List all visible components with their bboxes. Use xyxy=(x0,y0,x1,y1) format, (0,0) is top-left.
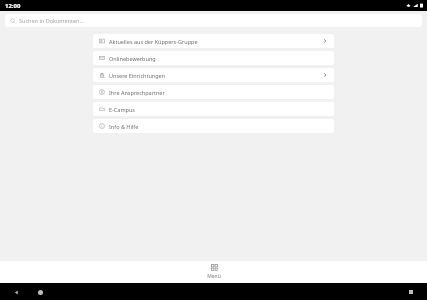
button[interactable]: Menü xyxy=(197,262,231,282)
button[interactable]: E-Campus xyxy=(93,102,334,116)
button[interactable]: Onlinebewerbung xyxy=(93,51,334,65)
button[interactable]: Aktuelles aus der Küppers-Gruppe xyxy=(93,34,334,48)
staticText: E-Campus xyxy=(109,106,328,113)
staticText: Unsere Einrichtungen xyxy=(109,72,322,79)
staticText: Info & Hilfe xyxy=(109,123,328,130)
staticText: 12:00 xyxy=(5,2,21,10)
staticText: Menü xyxy=(207,273,221,280)
button[interactable]: Recent apps xyxy=(405,286,417,298)
button[interactable]: Unsere Einrichtungen xyxy=(93,68,334,82)
staticText: Aktuelles aus der Küppers-Gruppe xyxy=(109,38,322,45)
button[interactable]: Ihre Ansprechpartner xyxy=(93,85,334,99)
button[interactable]: Home xyxy=(34,286,46,298)
button[interactable]: Back xyxy=(10,286,22,298)
button[interactable]: Info & Hilfe xyxy=(93,119,334,133)
button[interactable]: Suchen in Dokumenten... xyxy=(5,14,422,27)
staticText: Ihre Ansprechpartner xyxy=(109,89,328,96)
staticText: Suchen in Dokumenten... xyxy=(19,17,84,24)
staticText: Onlinebewerbung xyxy=(109,55,328,62)
